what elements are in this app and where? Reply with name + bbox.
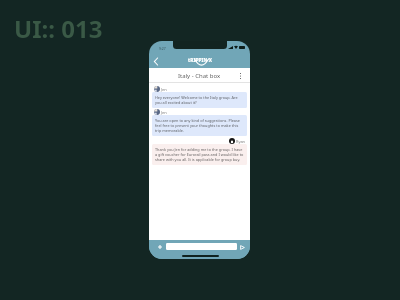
button[interactable]: Add attachment	[156, 243, 164, 251]
button[interactable]: More options	[236, 72, 244, 80]
staticText: Jen	[161, 110, 167, 115]
staticText: 9:27	[159, 46, 166, 51]
staticText: Ryan	[236, 139, 245, 144]
staticText: You are open to any kind of suggestions.…	[155, 118, 244, 133]
staticText: Italy - Chat box	[178, 72, 221, 80]
button[interactable]: Back	[150, 55, 162, 67]
staticText: Thank you Jen for adding me to the group…	[155, 147, 244, 162]
staticText: Hey everyone! Welcome to the Italy group…	[155, 95, 244, 105]
staticText: tRIPPIN X	[188, 57, 213, 64]
staticText: UI:: 013	[14, 12, 103, 45]
staticText: Jen	[161, 87, 167, 92]
button[interactable]	[166, 243, 237, 250]
button[interactable]: Send	[238, 243, 246, 251]
